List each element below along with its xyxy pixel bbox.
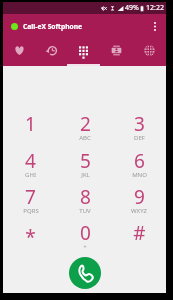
button[interactable]: 5 — [58, 143, 112, 179]
staticText: JKL — [81, 171, 90, 179]
button[interactable]: 7 — [3, 179, 58, 215]
button[interactable]: 6 — [112, 143, 166, 179]
staticText: WXYZ — [131, 207, 147, 215]
staticText: GHI — [25, 171, 36, 179]
staticText: 7 — [25, 184, 36, 210]
staticText: 49% — [125, 3, 139, 13]
button[interactable]: # — [112, 215, 166, 251]
staticText: 8 — [80, 184, 91, 210]
staticText: ABC — [79, 134, 91, 142]
staticText: 4 — [25, 148, 36, 174]
staticText: 12:22 — [146, 3, 164, 13]
staticText: MNO — [132, 171, 147, 179]
button[interactable]: 3 — [112, 106, 166, 142]
staticText: 1 — [25, 111, 36, 137]
staticText: 6 — [134, 148, 145, 174]
button[interactable]: Call — [69, 257, 101, 289]
button[interactable]: Favourites — [3, 38, 35, 66]
staticText: # — [133, 220, 146, 246]
button[interactable]: More options — [147, 18, 163, 34]
button[interactable]: Web — [133, 38, 166, 66]
staticText: DEF — [134, 134, 145, 142]
staticText: 9 — [134, 184, 145, 210]
button[interactable]: Contacts — [100, 38, 133, 66]
staticText: Call-eX Softphone — [23, 22, 83, 31]
button[interactable]: Dialpad — [67, 38, 100, 66]
staticText: 2 — [80, 111, 91, 137]
button[interactable]: 8 — [58, 179, 112, 215]
staticText: 0 — [80, 220, 91, 246]
staticText: TUV — [79, 207, 91, 215]
staticText: * — [25, 224, 36, 250]
button[interactable]: 9 — [112, 179, 166, 215]
button[interactable]: 4 — [3, 143, 58, 179]
staticText: 3 — [134, 111, 145, 137]
button[interactable]: 0 — [58, 215, 112, 251]
button[interactable]: 2 — [58, 106, 112, 142]
staticText: PQRS — [23, 207, 39, 215]
button[interactable]: * — [3, 215, 58, 251]
staticText: 5 — [80, 148, 91, 174]
button[interactable]: Recents — [35, 38, 67, 66]
staticText: + — [83, 243, 87, 251]
button[interactable]: 1 — [3, 106, 58, 142]
